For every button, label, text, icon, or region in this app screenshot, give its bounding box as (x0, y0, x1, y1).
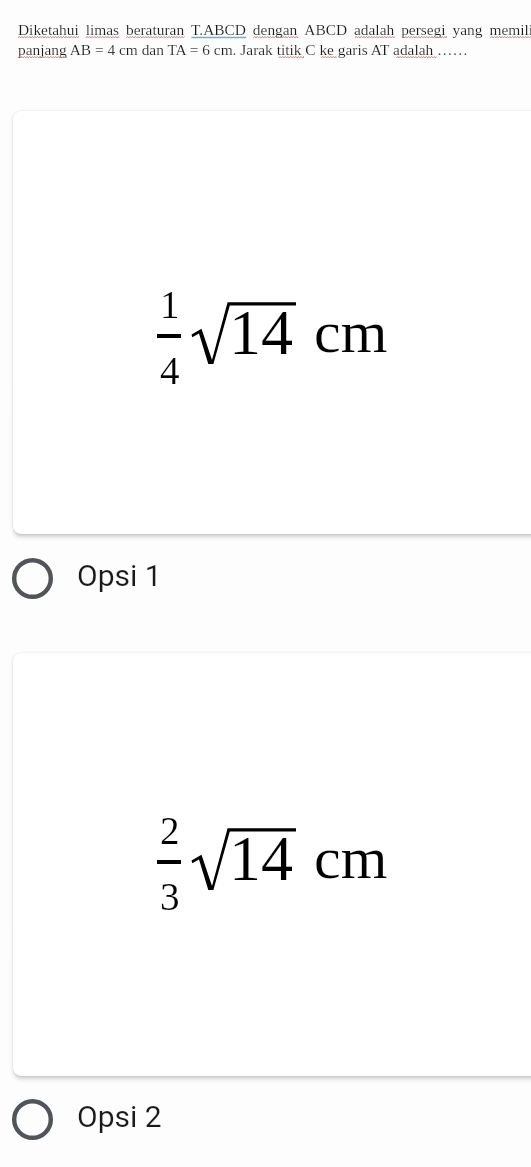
staticText: 1 (160, 283, 180, 326)
staticText: 3 (160, 875, 180, 918)
staticText: 2 (160, 809, 180, 852)
staticText: 4 (160, 349, 180, 392)
staticText: 14 (229, 823, 293, 894)
staticText: Opsi 2 (77, 1099, 162, 1134)
staticText: cm (314, 825, 388, 891)
staticText: Diketahui limas beraturan T.ABCD dengan … (18, 21, 531, 58)
button[interactable]: Opsi 1 (12, 558, 531, 599)
staticText: 14 (229, 297, 293, 368)
staticText: cm (314, 299, 388, 365)
staticText: Opsi 1 (77, 558, 162, 593)
button[interactable]: Opsi 2 (12, 1099, 531, 1140)
